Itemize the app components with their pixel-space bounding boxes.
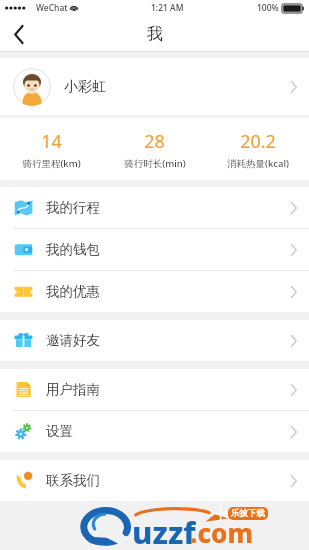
button[interactable]: 小彩虹 xyxy=(0,58,309,115)
button[interactable]: 我的行程 xyxy=(0,187,309,228)
button[interactable]: 设置 xyxy=(0,411,309,452)
staticText: 我的优惠 xyxy=(46,283,100,300)
staticText: 用户指南 xyxy=(46,381,100,398)
staticText: .com xyxy=(190,515,254,550)
button[interactable]: 28 xyxy=(103,129,206,170)
staticText: 联系我们 xyxy=(46,472,100,489)
staticText: WeChat xyxy=(36,2,68,14)
staticText: 消耗热量(kcal) xyxy=(227,157,289,170)
staticText: uzzf xyxy=(132,511,196,550)
button[interactable]: 用户指南 xyxy=(0,369,309,410)
staticText: 我的行程 xyxy=(46,199,100,216)
staticText: 骑行里程(km) xyxy=(22,157,81,170)
button[interactable]: 邀请好友 xyxy=(0,320,309,361)
button[interactable]: 联系我们 xyxy=(0,460,309,501)
button[interactable]: 我的钱包 xyxy=(0,229,309,270)
staticText: 设置 xyxy=(46,423,73,440)
staticText: 1:21 AM xyxy=(151,2,184,14)
staticText: 14 xyxy=(41,129,62,154)
staticText: 20.2 xyxy=(240,129,276,154)
staticText: 骑行时长(min) xyxy=(124,157,186,170)
staticText: 邀请好友 xyxy=(46,332,100,349)
staticText: 小彩虹 xyxy=(64,78,106,96)
button[interactable]: Back xyxy=(0,16,38,52)
staticText: 100% xyxy=(257,2,279,14)
button[interactable]: 我的优惠 xyxy=(0,271,309,312)
staticText: 乐披下载 xyxy=(231,508,265,519)
staticText: 我 xyxy=(147,24,163,44)
button[interactable]: 20.2 xyxy=(206,129,309,170)
staticText: 我的钱包 xyxy=(46,241,100,258)
staticText: 28 xyxy=(144,129,165,154)
button[interactable]: 14 xyxy=(0,129,103,170)
